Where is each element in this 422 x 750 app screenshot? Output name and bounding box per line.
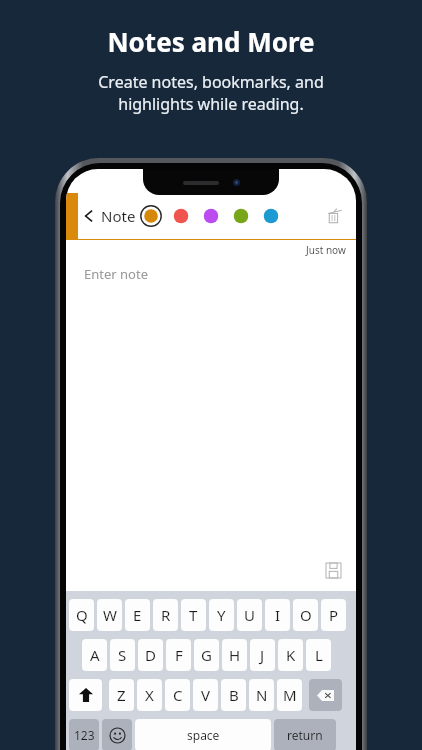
button[interactable]: O	[293, 599, 318, 631]
button[interactable]	[309, 679, 342, 711]
staticText: Z	[117, 685, 126, 705]
button[interactable]: I	[265, 599, 290, 631]
staticText: return	[287, 727, 323, 743]
staticText: Notes and More	[107, 24, 315, 59]
button[interactable]: K	[278, 639, 303, 671]
button[interactable]: Green colour	[230, 205, 252, 227]
staticText: W	[103, 605, 117, 625]
button[interactable]: Orange colour	[140, 205, 162, 227]
staticText: D	[145, 645, 156, 665]
staticText: Enter note	[84, 265, 148, 283]
button[interactable]: Save note	[322, 559, 344, 581]
staticText: C	[173, 685, 183, 705]
staticText: Q	[76, 605, 88, 625]
button[interactable]: G	[194, 639, 219, 671]
staticText: I	[275, 605, 281, 625]
button[interactable]: U	[237, 599, 262, 631]
button[interactable]: Y	[209, 599, 234, 631]
staticText: space	[187, 727, 220, 743]
button[interactable]: Q	[69, 599, 94, 631]
staticText: Just now	[306, 243, 346, 257]
button[interactable]: N	[249, 679, 274, 711]
staticText: P	[329, 605, 339, 625]
button[interactable]: Delete note	[324, 204, 348, 228]
staticText: T	[189, 605, 198, 625]
button[interactable]: F	[166, 639, 191, 671]
button[interactable]: E	[125, 599, 150, 631]
staticText: V	[201, 685, 211, 705]
button[interactable]	[102, 719, 132, 750]
button[interactable]: Blue colour	[260, 205, 282, 227]
button[interactable]: R	[153, 599, 178, 631]
button[interactable]: T	[181, 599, 206, 631]
staticText: 123	[74, 727, 95, 743]
staticText: Note	[101, 206, 136, 226]
button[interactable]: Red colour	[170, 205, 192, 227]
button[interactable]: H	[222, 639, 247, 671]
button[interactable]	[69, 679, 102, 711]
staticText: Y	[217, 605, 226, 625]
button[interactable]: D	[138, 639, 163, 671]
staticText: U	[244, 605, 255, 625]
staticText: J	[260, 645, 265, 665]
button[interactable]: W	[97, 599, 122, 631]
staticText: M	[283, 685, 297, 705]
staticText: L	[315, 645, 323, 665]
staticText: N	[256, 685, 268, 705]
button[interactable]: M	[277, 679, 302, 711]
button[interactable]: B	[221, 679, 246, 711]
button[interactable]: V	[193, 679, 218, 711]
button[interactable]: Note	[80, 206, 138, 226]
button[interactable]: J	[250, 639, 275, 671]
button[interactable]: 123	[69, 719, 99, 750]
button[interactable]: C	[165, 679, 190, 711]
button[interactable]: P	[321, 599, 346, 631]
staticText: O	[300, 605, 312, 625]
staticText: K	[286, 645, 296, 665]
button[interactable]: L	[306, 639, 331, 671]
staticText: E	[133, 605, 142, 625]
staticText: X	[145, 685, 154, 705]
button[interactable]: Purple colour	[200, 205, 222, 227]
button[interactable]: X	[137, 679, 162, 711]
staticText: S	[118, 645, 127, 665]
button[interactable]: space	[135, 719, 271, 750]
staticText: H	[229, 645, 241, 665]
staticText: A	[90, 645, 100, 665]
button[interactable]: Z	[109, 679, 134, 711]
button[interactable]: A	[82, 639, 107, 671]
staticText: R	[161, 605, 171, 625]
staticText: B	[229, 685, 239, 705]
staticText: G	[201, 645, 212, 665]
staticText: Create notes, bookmarks, and highlights …	[98, 71, 324, 115]
button[interactable]: return	[274, 719, 336, 750]
staticText: F	[175, 645, 183, 665]
button[interactable]: S	[110, 639, 135, 671]
